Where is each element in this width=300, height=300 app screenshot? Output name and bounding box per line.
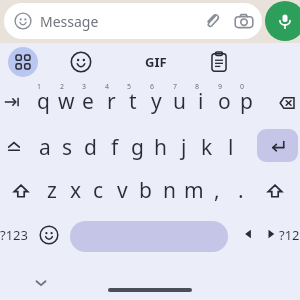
- button[interactable]: GIF: [140, 50, 172, 74]
- button[interactable]: ?123: [279, 222, 300, 248]
- staticText: 1: [37, 82, 42, 92]
- staticText: 8: [195, 82, 200, 92]
- staticText: GIF: [145, 53, 167, 71]
- staticText: 4: [105, 82, 110, 92]
- staticText: ?123: [0, 226, 28, 244]
- staticText: p: [240, 87, 253, 116]
- staticText: l: [228, 133, 234, 162]
- staticText: k: [201, 133, 213, 162]
- staticText: e: [82, 87, 94, 116]
- button[interactable]: v: [111, 173, 134, 207]
- button[interactable]: Voice message: [265, 1, 300, 41]
- button[interactable]: Clipboard: [208, 51, 230, 73]
- button[interactable]: q: [32, 84, 54, 118]
- button[interactable]: Enter: [257, 129, 298, 162]
- button[interactable]: Shift: [262, 178, 288, 204]
- button[interactable]: n: [158, 173, 181, 207]
- button[interactable]: o: [213, 84, 235, 118]
- button[interactable]: Camera: [234, 12, 254, 32]
- button[interactable]: x: [64, 173, 87, 207]
- button[interactable]: f: [103, 130, 126, 164]
- button[interactable]: t: [122, 84, 144, 118]
- staticText: g: [131, 133, 144, 162]
- button[interactable]: Tab: [0, 90, 24, 114]
- button[interactable]: Hide keyboard: [32, 274, 50, 292]
- staticText: r: [107, 87, 116, 116]
- button[interactable]: j: [172, 130, 195, 164]
- button[interactable]: Shift: [8, 178, 34, 204]
- staticText: 7: [173, 82, 178, 92]
- staticText: a: [39, 133, 51, 162]
- button[interactable]: l: [219, 130, 242, 164]
- staticText: ,: [214, 176, 220, 205]
- staticText: o: [218, 87, 231, 116]
- button[interactable]: w: [55, 84, 77, 118]
- staticText: n: [163, 176, 176, 205]
- staticText: d: [84, 133, 97, 162]
- button[interactable]: u: [168, 84, 190, 118]
- staticText: .: [238, 176, 244, 205]
- button[interactable]: y: [145, 84, 167, 118]
- staticText: h: [154, 133, 167, 162]
- button[interactable]: Emoji: [14, 12, 32, 30]
- button[interactable]: Move left: [239, 225, 257, 243]
- button[interactable]: m: [182, 173, 205, 207]
- staticText: 2: [60, 82, 65, 92]
- button[interactable]: d: [79, 130, 102, 164]
- staticText: 0: [240, 82, 245, 92]
- staticText: w: [58, 87, 75, 116]
- button[interactable]: c: [87, 173, 110, 207]
- button[interactable]: g: [126, 130, 149, 164]
- button[interactable]: Emoji: [4, 3, 262, 39]
- staticText: 5: [127, 82, 132, 92]
- staticText: 6: [150, 82, 155, 92]
- button[interactable]: Emoji: [39, 225, 59, 245]
- button[interactable]: i: [190, 84, 212, 118]
- staticText: s: [62, 133, 73, 162]
- staticText: c: [93, 176, 104, 205]
- staticText: 9: [218, 82, 223, 92]
- button[interactable]: Move right: [262, 225, 280, 243]
- staticText: i: [198, 87, 204, 116]
- staticText: j: [181, 133, 187, 162]
- staticText: 3: [82, 82, 87, 92]
- button[interactable]: s: [56, 130, 79, 164]
- button[interactable]: Toolbar: [8, 47, 38, 77]
- button[interactable]: Attach: [202, 11, 222, 31]
- button[interactable]: p: [235, 84, 257, 118]
- staticText: ?123: [279, 226, 300, 244]
- button[interactable]: z: [40, 173, 63, 207]
- staticText: t: [129, 87, 137, 116]
- staticText: x: [70, 176, 82, 205]
- button[interactable]: Space: [70, 221, 228, 252]
- staticText: b: [139, 176, 152, 205]
- button[interactable]: a: [33, 130, 56, 164]
- button[interactable]: e: [77, 84, 99, 118]
- button[interactable]: .: [229, 173, 252, 207]
- staticText: q: [37, 87, 50, 116]
- staticText: m: [184, 176, 204, 205]
- button[interactable]: k: [195, 130, 218, 164]
- button[interactable]: Caps: [2, 134, 26, 158]
- staticText: f: [111, 133, 119, 162]
- button[interactable]: ?123: [0, 222, 34, 248]
- button[interactable]: Backspace: [272, 90, 298, 116]
- staticText: u: [173, 87, 186, 116]
- button[interactable]: ,: [205, 173, 228, 207]
- staticText: Message: [40, 12, 99, 31]
- button[interactable]: b: [134, 173, 157, 207]
- staticText: y: [151, 87, 162, 116]
- staticText: v: [117, 176, 128, 205]
- button[interactable]: Emoji: [70, 51, 92, 73]
- button[interactable]: h: [149, 130, 172, 164]
- button[interactable]: r: [100, 84, 122, 118]
- staticText: z: [47, 176, 57, 205]
